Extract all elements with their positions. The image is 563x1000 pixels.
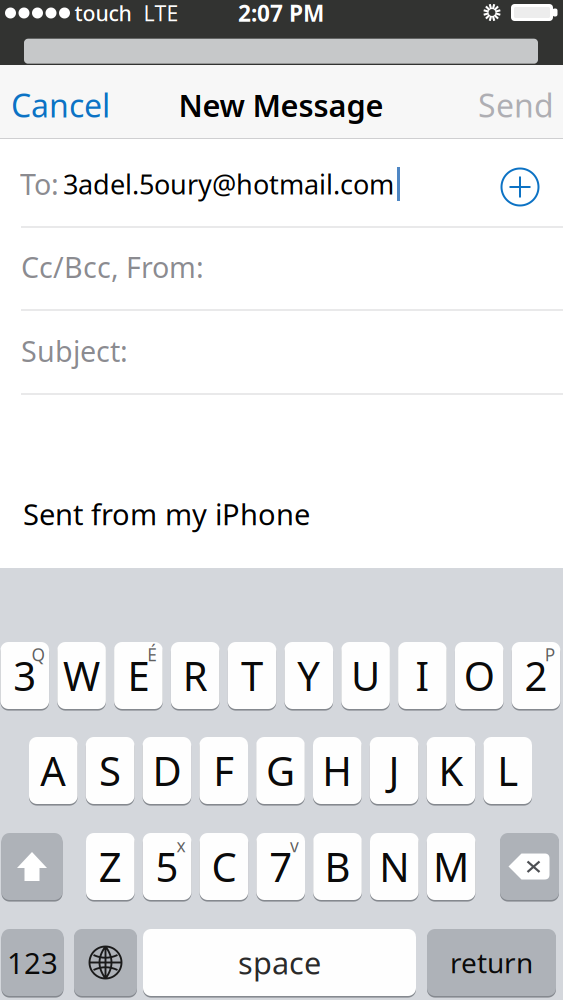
button[interactable]: U xyxy=(341,642,390,709)
staticText: LTE xyxy=(143,0,178,27)
button[interactable]: J xyxy=(370,737,418,804)
button[interactable]: Add contact xyxy=(496,163,544,211)
button[interactable]: B xyxy=(313,833,362,900)
button[interactable]: N xyxy=(370,833,419,900)
button[interactable]: Z xyxy=(86,833,135,900)
button[interactable]: Next keyboard xyxy=(74,929,137,996)
staticText: M xyxy=(433,840,469,893)
staticText: Z xyxy=(99,840,122,893)
staticText: Q xyxy=(32,643,46,666)
staticText: space xyxy=(238,942,321,983)
staticText: S xyxy=(99,744,121,797)
button[interactable]: E xyxy=(114,642,163,709)
staticText: x xyxy=(176,834,185,857)
button[interactable]: Y xyxy=(284,642,333,709)
staticText: N xyxy=(379,840,409,893)
button[interactable]: G xyxy=(256,737,305,804)
staticText: T xyxy=(241,649,263,702)
staticText: J xyxy=(389,744,400,797)
button[interactable]: F xyxy=(199,737,248,804)
button[interactable]: Send xyxy=(444,77,554,133)
button[interactable]: A xyxy=(29,737,78,804)
staticText: return xyxy=(450,944,533,981)
staticText: 3 xyxy=(13,649,36,702)
staticText: 3adel.5oury@hotmail.com xyxy=(63,166,394,202)
button[interactable]: D xyxy=(143,737,191,804)
staticText: 2 xyxy=(524,649,547,702)
staticText: Subject: xyxy=(21,331,128,370)
button[interactable]: L xyxy=(483,737,532,804)
staticText: U xyxy=(351,649,380,702)
button[interactable]: 5 xyxy=(143,833,191,900)
button[interactable]: 3 xyxy=(0,642,49,709)
staticText: 123 xyxy=(7,943,58,982)
button[interactable]: T xyxy=(228,642,276,709)
staticText: W xyxy=(63,649,100,702)
button[interactable]: H xyxy=(313,737,362,804)
staticText: 5 xyxy=(156,840,179,893)
staticText: H xyxy=(322,744,352,797)
staticText: É xyxy=(147,643,157,666)
staticText: K xyxy=(438,744,463,797)
button[interactable]: Delete xyxy=(500,833,559,900)
button[interactable]: M xyxy=(427,833,475,900)
button[interactable]: Shift xyxy=(1,833,62,900)
button[interactable]: Cancel xyxy=(11,77,131,133)
staticText: New Message xyxy=(178,85,383,125)
staticText: L xyxy=(497,744,518,797)
button[interactable]: space xyxy=(143,929,416,996)
button[interactable]: K xyxy=(427,737,475,804)
button[interactable]: 7 xyxy=(256,833,305,900)
staticText: Cc/Bcc, From: xyxy=(21,247,204,286)
staticText: I xyxy=(415,649,429,702)
staticText: 7 xyxy=(269,840,292,893)
button[interactable]: W xyxy=(57,642,106,709)
button[interactable]: New Message xyxy=(161,80,401,130)
staticText: G xyxy=(266,744,295,797)
staticText: v xyxy=(290,834,299,857)
staticText: Cancel xyxy=(11,84,110,126)
staticText: P xyxy=(545,643,555,666)
button[interactable]: 2 xyxy=(512,642,560,709)
staticText: F xyxy=(213,744,234,797)
staticText: To: xyxy=(20,164,59,203)
staticText: B xyxy=(324,840,350,893)
staticText: O xyxy=(464,649,495,702)
button[interactable]: C xyxy=(200,833,248,900)
staticText: touch xyxy=(74,0,131,27)
button[interactable]: R xyxy=(171,642,219,709)
button[interactable]: 123 xyxy=(1,929,63,996)
staticText: Sent from my iPhone xyxy=(23,494,310,534)
staticText: D xyxy=(152,744,181,797)
staticText: Y xyxy=(297,649,320,702)
staticText: A xyxy=(40,744,66,797)
staticText: 2:07 PM xyxy=(238,0,324,28)
button[interactable]: S xyxy=(86,737,134,804)
button[interactable]: I xyxy=(398,642,447,709)
staticText: R xyxy=(183,649,208,702)
button[interactable]: O xyxy=(455,642,503,709)
button[interactable]: return xyxy=(427,929,556,996)
staticText: C xyxy=(211,840,236,893)
staticText: Send xyxy=(478,84,554,126)
staticText: E xyxy=(127,649,149,702)
